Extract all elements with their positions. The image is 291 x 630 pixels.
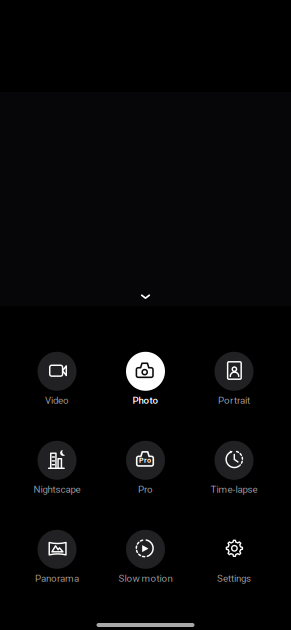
staticText: Time-lapse (210, 484, 257, 495)
button[interactable]: Portrait (190, 352, 278, 407)
button[interactable]: Photo (101, 352, 190, 407)
staticText: Video (45, 395, 69, 406)
staticText: Panorama (35, 573, 79, 584)
staticText: Slow motion (118, 573, 172, 584)
staticText: Nightscape (33, 484, 80, 495)
button[interactable]: Slow motion (101, 530, 190, 585)
button[interactable]: Time-lapse (190, 441, 278, 496)
staticText: Settings (217, 573, 251, 584)
button[interactable]: Video (13, 352, 101, 407)
button[interactable]: Nightscape (13, 441, 101, 496)
button[interactable]: Panorama (13, 530, 101, 585)
button[interactable]: Settings (190, 530, 278, 585)
staticText: Pro (138, 484, 153, 495)
staticText: Photo (132, 395, 158, 406)
staticText: Portrait (218, 395, 250, 406)
button[interactable]: Hide modes (128, 286, 162, 308)
staticText: Pro (139, 456, 151, 465)
button[interactable]: Pro (101, 441, 190, 496)
